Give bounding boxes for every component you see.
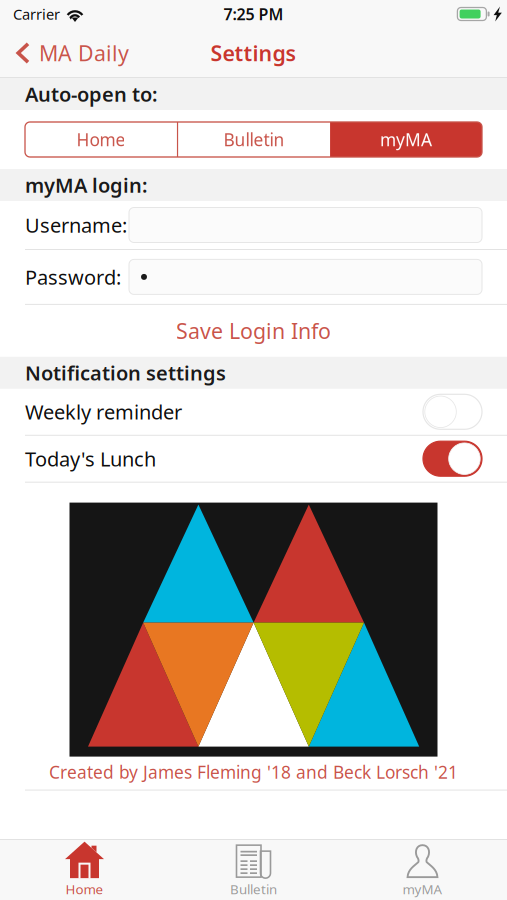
button[interactable]: myMA (338, 839, 507, 900)
staticText: myMA login: (25, 172, 148, 198)
staticText: 7:25 PM (223, 3, 283, 25)
staticText: Password: (25, 264, 121, 290)
staticText: Username: (25, 212, 127, 238)
button[interactable]: Bulletin (169, 839, 338, 900)
staticText: Home (76, 128, 125, 151)
button[interactable]: MA Daily (0, 31, 139, 75)
staticText: Weekly reminder (25, 398, 182, 425)
button[interactable]: Today's Lunch (423, 441, 482, 476)
staticText: Bulletin (224, 128, 285, 151)
staticText: myMA (402, 880, 442, 898)
staticText: Home (65, 880, 103, 898)
staticText: Created by James Fleming '18 and Beck Lo… (49, 761, 458, 784)
button[interactable]: Save Login Info (0, 305, 507, 357)
button[interactable]: Home (25, 122, 177, 157)
staticText: Notification settings (25, 359, 226, 386)
button[interactable]: Bulletin (178, 122, 330, 157)
staticText: myMA (380, 128, 432, 151)
staticText: Carrier (13, 4, 60, 24)
staticText: Save Login Info (176, 317, 331, 345)
staticText: Settings (210, 39, 296, 67)
staticText: Bulletin (230, 880, 277, 898)
button[interactable]: Home (0, 839, 169, 900)
button[interactable]: Weekly reminder (423, 394, 482, 429)
staticText: MA Daily (39, 39, 129, 67)
button[interactable]: myMA (330, 122, 482, 157)
staticText: Today's Lunch (25, 445, 156, 472)
staticText: Auto-open to: (25, 81, 158, 107)
